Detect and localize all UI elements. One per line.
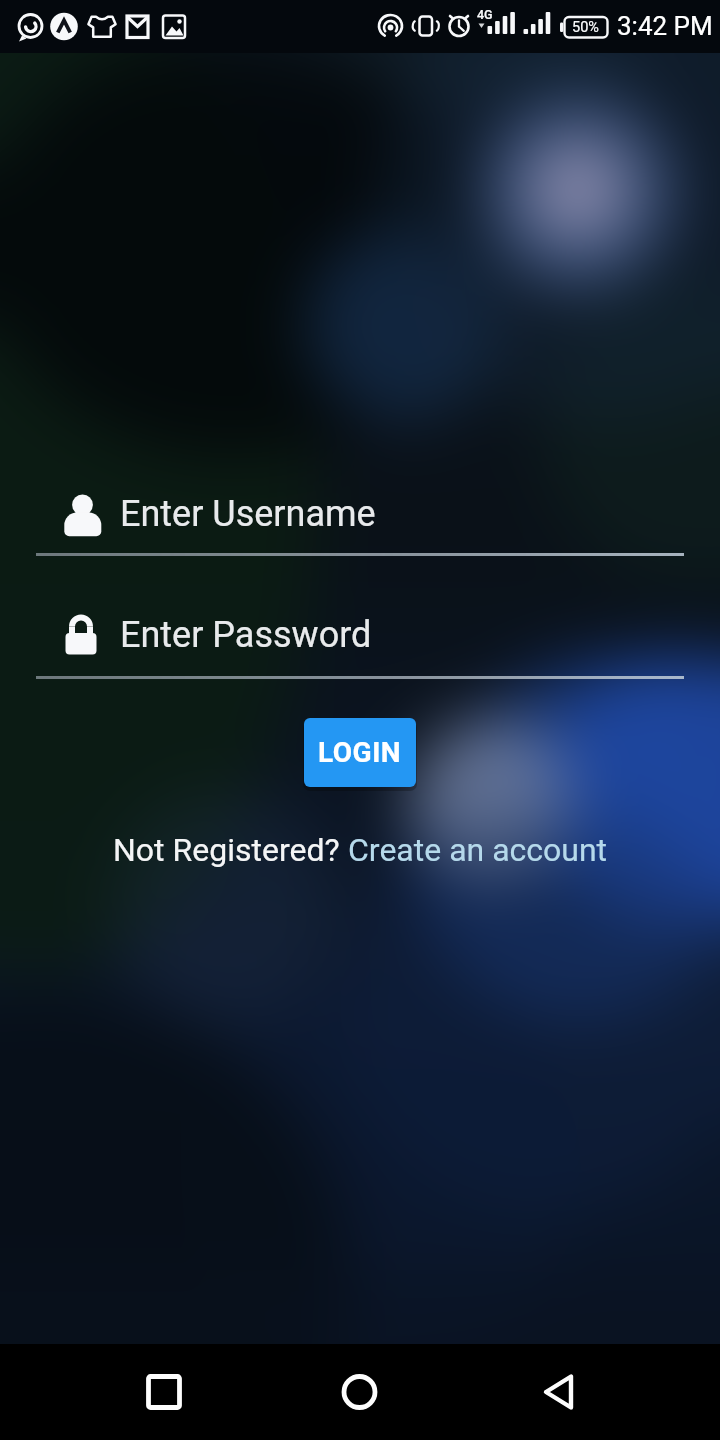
staticText: Enter Username xyxy=(120,493,376,535)
staticText: 4G xyxy=(477,7,493,22)
staticText: Enter Password xyxy=(120,614,372,656)
staticText: LOGIN xyxy=(318,736,402,769)
button[interactable]: Enter Password xyxy=(36,600,684,680)
staticText: 50% xyxy=(572,19,599,36)
button[interactable]: Create an account xyxy=(348,831,608,869)
button[interactable] xyxy=(116,1344,212,1440)
button[interactable] xyxy=(312,1344,408,1440)
staticText: 3:42 PM xyxy=(617,11,713,41)
staticText: Not Registered? xyxy=(113,831,348,869)
button[interactable] xyxy=(510,1344,606,1440)
button[interactable]: LOGIN xyxy=(304,718,416,787)
button[interactable]: Enter Username xyxy=(36,478,684,556)
